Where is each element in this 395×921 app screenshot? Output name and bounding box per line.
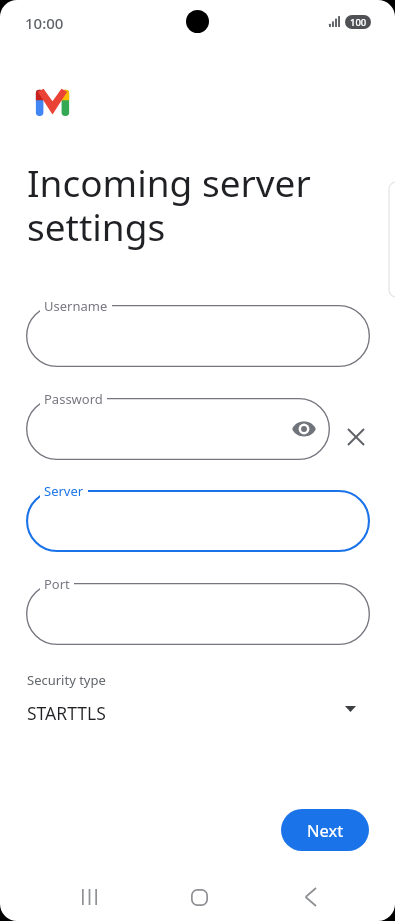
button[interactable]: Security type (0, 665, 395, 735)
staticText: Username (44, 297, 108, 315)
staticText: Next (307, 819, 344, 841)
button[interactable]: Clear (340, 421, 372, 453)
staticText: Incoming server settings (27, 157, 311, 252)
button[interactable]: Username (26, 305, 370, 367)
staticText: Port (44, 575, 70, 593)
button[interactable]: Back (293, 880, 327, 914)
button[interactable]: Next (281, 809, 369, 851)
button[interactable]: Home (182, 880, 216, 914)
button[interactable]: Server (26, 490, 370, 552)
staticText: Security type (27, 671, 106, 689)
button[interactable]: Password (26, 398, 330, 460)
staticText: 100 (350, 16, 367, 29)
button[interactable]: Recent apps (72, 880, 106, 914)
button[interactable]: Port (26, 583, 370, 645)
button[interactable]: Show password (288, 413, 320, 445)
staticText: 10:00 (25, 13, 64, 33)
staticText: Server (44, 482, 84, 500)
staticText: Password (44, 390, 103, 408)
staticText: STARTTLS (27, 701, 106, 725)
